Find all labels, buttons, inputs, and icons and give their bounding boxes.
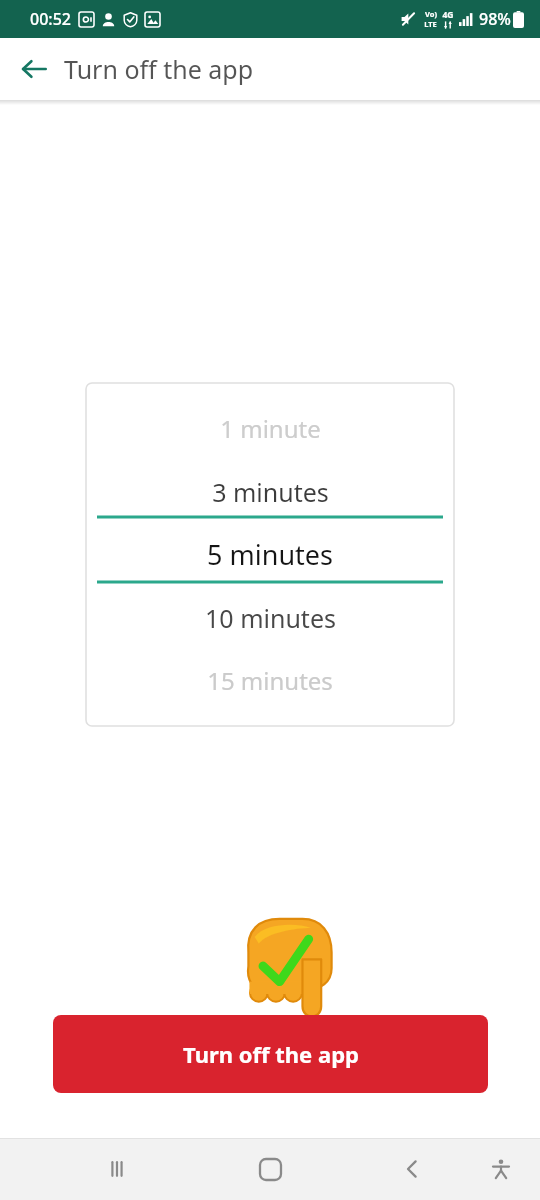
staticText: LTE [424,19,437,29]
button[interactable]: Back [10,45,58,93]
staticText: Vo) [425,9,437,19]
staticText: Turn off the app [64,52,254,86]
staticText: Turn off the app [183,1039,359,1069]
button[interactable]: Recents [90,1141,146,1197]
staticText: 98% [479,8,511,30]
staticText: 10 minutes [205,601,336,635]
button[interactable]: 3 minutes [86,460,454,523]
button[interactable]: 5 minutes [86,523,454,586]
staticText: 4G [442,9,454,21]
button[interactable]: 1 minute [86,397,454,460]
button[interactable]: 15 minutes [86,649,454,712]
button[interactable]: Home [242,1141,298,1197]
staticText: 15 minutes [207,664,333,697]
button[interactable]: Accessibility [478,1146,524,1192]
button[interactable]: Turn off the app [53,1015,488,1093]
button[interactable]: Back [384,1141,440,1197]
staticText: 3 minutes [212,475,329,509]
button[interactable]: 10 minutes [86,586,454,649]
staticText: 5 minutes [207,536,333,573]
staticText: 00:52 [30,8,71,30]
staticText: 1 minute [220,412,321,445]
